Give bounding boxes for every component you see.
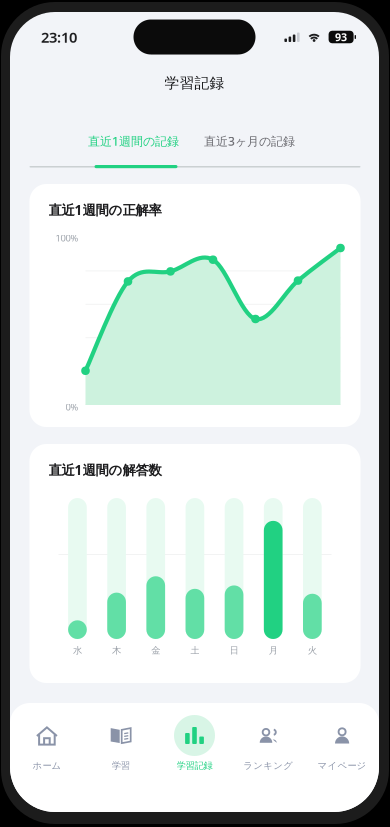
staticText: 100% <box>55 232 78 244</box>
staticText: 23:10 <box>41 27 77 47</box>
staticText: 学習記録 <box>176 760 212 771</box>
staticText: マイページ <box>318 760 367 771</box>
staticText: 土 <box>190 645 199 656</box>
staticText: 火 <box>308 645 317 656</box>
button[interactable]: ホーム <box>10 703 84 798</box>
staticText: 学習記録 <box>164 74 224 92</box>
button[interactable]: 学習記録 <box>158 703 231 798</box>
button[interactable]: 学習 <box>84 703 158 798</box>
staticText: 直近3ヶ月の記録 <box>204 133 295 149</box>
staticText: 月 <box>269 645 278 656</box>
staticText: 0% <box>65 401 78 413</box>
button[interactable]: 直近3ヶ月の記録 <box>186 124 312 158</box>
staticText: 金 <box>151 645 160 656</box>
staticText: 水 <box>73 645 82 656</box>
staticText: ランキング <box>243 760 293 771</box>
staticText: 93 <box>335 30 347 44</box>
staticText: 木 <box>112 645 121 656</box>
staticText: 学習 <box>112 760 130 771</box>
staticText: ホーム <box>32 760 61 771</box>
staticText: 直近1週間の記録 <box>88 133 179 149</box>
button[interactable]: ランキング <box>231 703 305 798</box>
staticText: 日 <box>229 645 238 656</box>
button[interactable]: マイページ <box>305 703 379 798</box>
staticText: 直近1週間の解答数 <box>48 461 161 479</box>
staticText: 直近1週間の正解率 <box>48 201 161 219</box>
button[interactable]: 直近1週間の記録 <box>70 124 196 158</box>
